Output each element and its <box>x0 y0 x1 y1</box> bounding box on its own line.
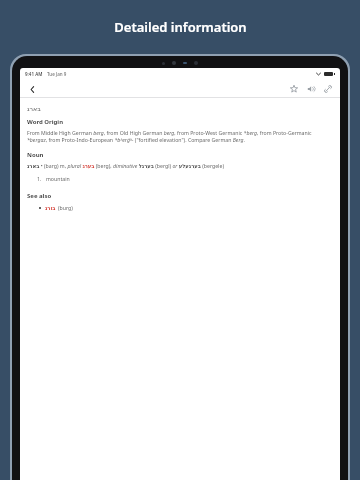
staticText: See also <box>27 192 52 200</box>
button[interactable]: Favorite <box>285 80 302 97</box>
staticText: Word Origin <box>27 118 64 126</box>
staticText: בארג • (barg) m, plural בערג (berg), dim… <box>27 162 224 169</box>
staticText: 1. <box>37 175 42 182</box>
staticText: בורג <box>45 205 56 211</box>
button[interactable]: Share link <box>319 80 336 97</box>
staticText: mountain <box>46 175 70 182</box>
staticText: Detailed information <box>114 18 247 36</box>
button[interactable]: Listen <box>302 80 319 97</box>
button[interactable]: בורג <box>45 204 73 211</box>
staticText: בארג <box>27 105 41 112</box>
staticText: Tue Jan 9 <box>47 71 67 77</box>
staticText: From Middle High German berg, from Old H… <box>27 129 333 143</box>
staticText: 9:41 AM <box>25 71 43 77</box>
staticText: (burg) <box>58 204 73 211</box>
staticText: Noun <box>27 151 44 159</box>
button[interactable]: Back <box>24 81 40 97</box>
